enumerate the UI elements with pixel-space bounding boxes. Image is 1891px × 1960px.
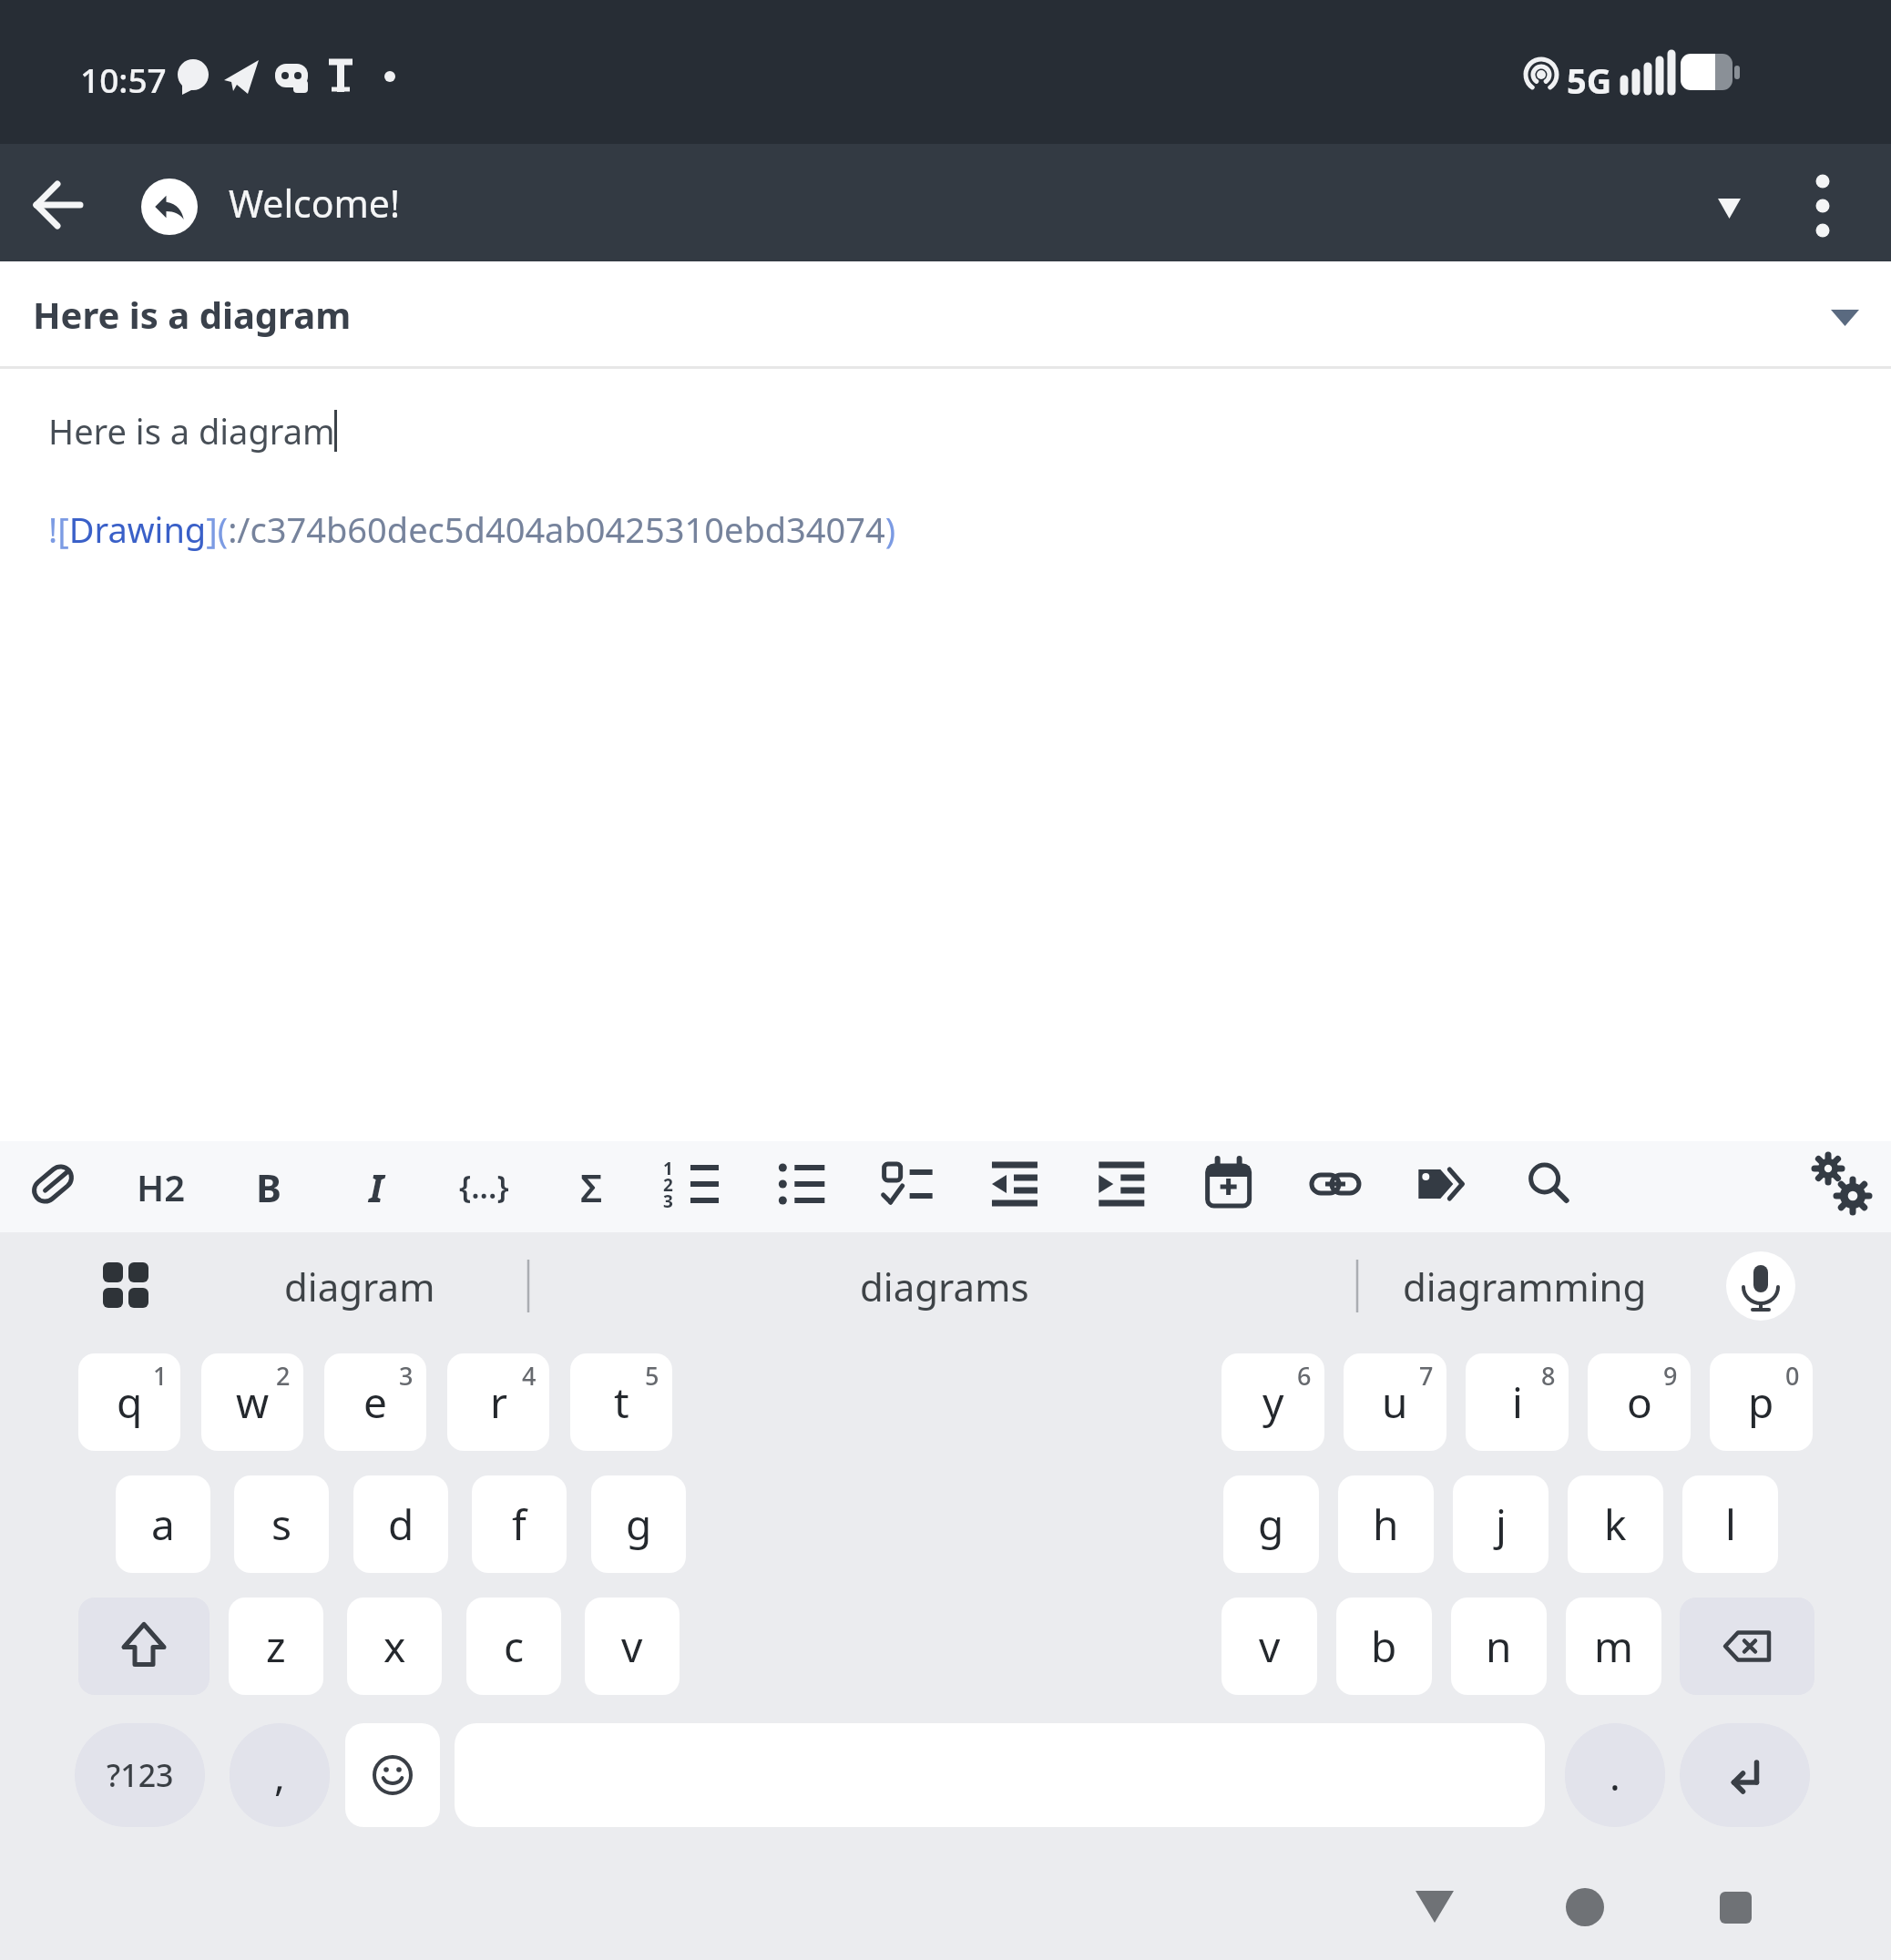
staticText: k [1604,1496,1627,1553]
staticText: f [512,1496,526,1553]
staticText: z [266,1618,286,1675]
staticText: ![Drawing](:/c374b60dec5d404ab0425310ebd… [48,505,896,553]
button[interactable]: ?123 [75,1723,205,1827]
button[interactable] [633,1141,760,1232]
staticText: 6 [1297,1359,1312,1393]
button[interactable]: k [1568,1475,1663,1573]
button[interactable]: h [1338,1475,1434,1573]
button[interactable] [1514,1141,1640,1232]
staticText: y [1262,1373,1284,1431]
staticText: diagramming [1403,1261,1647,1312]
staticText: I [369,1161,384,1213]
staticText: 5G [1567,56,1612,104]
button[interactable] [1547,1870,1623,1946]
staticText: . [1610,1748,1620,1802]
button[interactable]: w [201,1353,303,1451]
button[interactable] [760,1141,885,1232]
button[interactable] [1685,144,1776,261]
button[interactable] [1680,1723,1810,1827]
button[interactable]: x [347,1598,442,1695]
staticText: 2 [276,1359,291,1393]
button[interactable]: g [591,1475,686,1573]
button[interactable] [1137,1141,1262,1232]
button[interactable]: j [1453,1475,1549,1573]
staticText: 7 [1419,1359,1434,1393]
staticText: diagrams [860,1261,1029,1312]
staticText: 5 [645,1359,659,1393]
button[interactable]: n [1451,1598,1547,1695]
button[interactable] [1697,1870,1773,1946]
staticText: c [504,1618,525,1675]
staticText: i [1512,1373,1523,1431]
button[interactable] [1388,1141,1514,1232]
button[interactable] [82,1251,164,1323]
staticText: b [1371,1618,1397,1675]
button[interactable] [1785,144,1867,261]
staticText: , [274,1748,285,1802]
button[interactable] [1726,1251,1795,1321]
staticText: w [236,1373,270,1431]
staticText: 1 [663,1157,673,1179]
staticText: j [1496,1496,1507,1553]
staticText: 3 [663,1189,673,1211]
button[interactable]: v [585,1598,680,1695]
button[interactable]: f [472,1475,567,1573]
staticText: a [151,1496,175,1553]
button[interactable] [345,1723,440,1827]
button[interactable] [253,1141,380,1232]
button[interactable] [1011,1141,1137,1232]
staticText: Here is a diagram [33,290,352,339]
button[interactable]: q [78,1353,180,1451]
button[interactable]: c [466,1598,561,1695]
staticText: r [490,1373,507,1431]
button[interactable]: p [1710,1353,1813,1451]
staticText: 10:57 [80,56,167,102]
button[interactable]: t [570,1353,672,1451]
button[interactable]: Here is a diagram [0,261,1891,369]
button[interactable]: i [1466,1353,1569,1451]
button[interactable] [0,144,118,261]
button[interactable]: o [1588,1353,1691,1451]
button[interactable]: d [353,1475,448,1573]
button[interactable]: Here is a diagram [0,369,1891,1141]
button[interactable]: v [1221,1598,1317,1695]
button[interactable]: u [1344,1353,1446,1451]
button[interactable] [885,1141,1011,1232]
button[interactable]: a [116,1475,210,1573]
staticText: d [388,1496,414,1553]
button[interactable]: z [229,1598,323,1695]
staticText: s [271,1496,292,1553]
button[interactable] [0,1141,127,1232]
staticText: {...} [459,1166,509,1208]
staticText: l [1725,1496,1736,1553]
staticText: 4 [522,1359,537,1393]
staticText: 1 [153,1359,168,1393]
staticText: Here is a diagram [48,407,335,454]
button[interactable]: s [234,1475,329,1573]
button[interactable]: , [230,1723,330,1827]
staticText: 2 [663,1173,673,1195]
button[interactable] [506,1141,633,1232]
staticText: g [626,1496,652,1553]
button[interactable] [1262,1141,1388,1232]
button[interactable]: y [1221,1353,1324,1451]
button[interactable] [1396,1870,1473,1946]
button[interactable]: g [1223,1475,1319,1573]
button[interactable]: m [1566,1598,1661,1695]
staticText: n [1486,1618,1512,1675]
button[interactable]: r [447,1353,549,1451]
button[interactable]: e [324,1353,426,1451]
button[interactable] [1765,1141,1891,1232]
button[interactable] [78,1598,210,1695]
button[interactable]: . [1565,1723,1665,1827]
button[interactable] [127,1141,253,1232]
button[interactable] [380,1141,506,1232]
button[interactable]: b [1336,1598,1432,1695]
staticText: 9 [1663,1359,1678,1393]
button[interactable]: l [1682,1475,1778,1573]
button[interactable] [1680,1598,1814,1695]
staticText: x [383,1618,406,1675]
staticText: p [1748,1373,1774,1431]
